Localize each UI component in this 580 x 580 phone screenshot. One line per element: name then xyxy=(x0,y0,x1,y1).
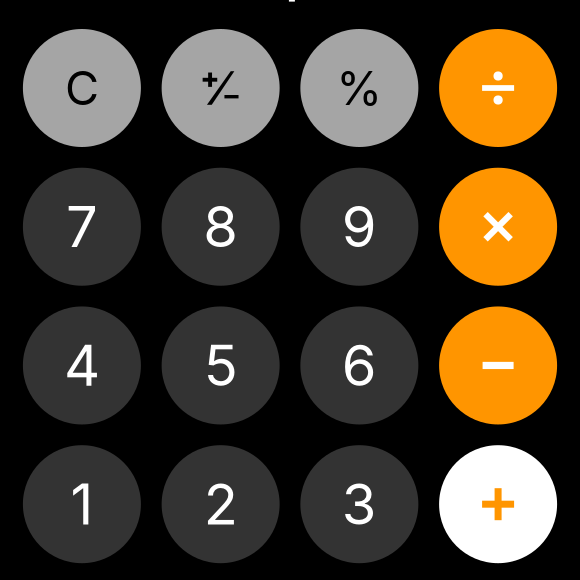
staticText: 1 xyxy=(70,470,93,538)
button[interactable]: Clear xyxy=(23,29,141,147)
staticText: 5 xyxy=(204,332,238,399)
button[interactable]: 8 xyxy=(162,168,280,286)
button[interactable]: 6 xyxy=(300,306,418,424)
button[interactable]: 1 xyxy=(23,445,141,563)
button[interactable]: 2 xyxy=(162,445,280,563)
button[interactable]: Add xyxy=(439,445,557,563)
button[interactable]: 5 xyxy=(162,306,280,424)
button[interactable]: 9 xyxy=(300,168,418,286)
staticText: 4 xyxy=(64,332,100,399)
staticText: C xyxy=(65,60,99,116)
staticText: 7 xyxy=(66,193,98,261)
button[interactable]: Divide xyxy=(439,29,557,147)
button[interactable]: Percent xyxy=(300,29,418,147)
staticText: % xyxy=(336,60,382,116)
staticText: 8 xyxy=(203,193,238,261)
staticText: 3 xyxy=(342,470,377,538)
staticText: 6 xyxy=(342,332,377,399)
button[interactable]: 3 xyxy=(300,445,418,563)
button[interactable]: Subtract xyxy=(439,306,557,424)
button[interactable]: 4 xyxy=(23,306,141,424)
button[interactable]: Toggle sign xyxy=(162,29,280,147)
staticText: 2 xyxy=(204,470,238,538)
button[interactable]: Multiply xyxy=(439,168,557,286)
button[interactable]: 7 xyxy=(23,168,141,286)
staticText: 9 xyxy=(342,193,377,261)
